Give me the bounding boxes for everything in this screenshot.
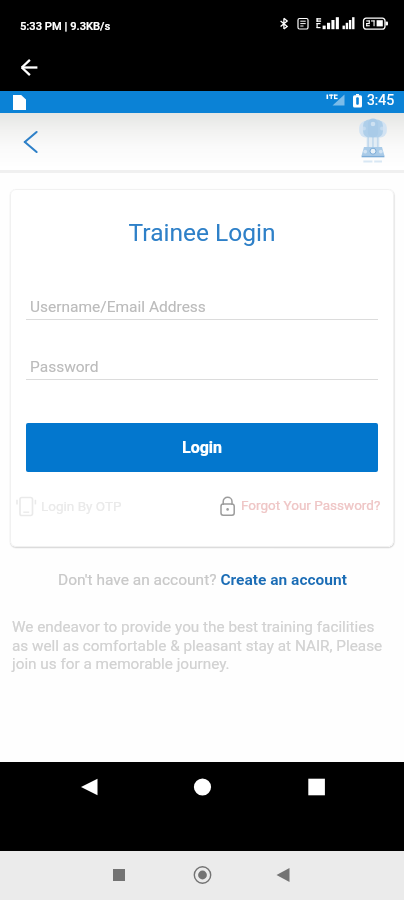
button[interactable]: Back (15, 53, 44, 82)
staticText: Username/Email Address (30, 298, 206, 316)
staticText: Login By OTP (41, 498, 122, 514)
staticText: Login (182, 438, 223, 457)
staticText: We endeavor to provide you the best trai… (12, 618, 402, 672)
staticText: 5:33 PM | 9.3KB/s (20, 20, 111, 33)
button[interactable]: Forgot Your Password? (220, 494, 381, 516)
staticText: Password (30, 358, 99, 376)
button[interactable]: Don't have an account? Create an account (58, 571, 347, 589)
staticText: 3:45 (367, 92, 394, 108)
staticText: Trainee Login (0, 218, 404, 247)
button[interactable]: Login (26, 423, 378, 472)
staticText: Forgot Your Password? (241, 497, 381, 513)
button[interactable]: Navigate back (16, 127, 48, 159)
button[interactable]: Login By OTP (16, 494, 122, 518)
